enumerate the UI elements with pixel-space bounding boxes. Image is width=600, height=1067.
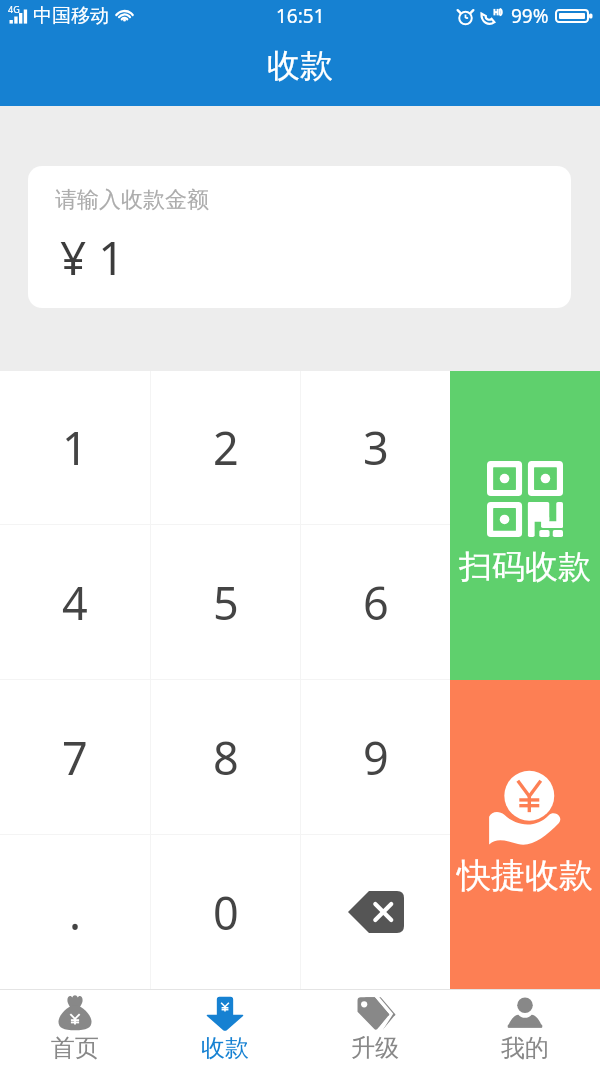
staticText: 5 xyxy=(213,572,239,633)
button[interactable]: 升级 xyxy=(300,990,450,1067)
button[interactable]: 7 xyxy=(0,680,150,834)
button[interactable]: Delete xyxy=(301,835,450,989)
staticText: 4 xyxy=(62,572,88,633)
staticText: 0 xyxy=(213,882,239,943)
staticText: 快捷收款 xyxy=(457,854,593,897)
button[interactable]: 4 xyxy=(0,525,150,679)
button[interactable]: 8 xyxy=(151,680,300,834)
button[interactable]: 首页 xyxy=(0,990,150,1067)
button[interactable]: 扫码收款 xyxy=(450,371,600,680)
button[interactable]: 3 xyxy=(301,371,450,524)
staticText: 我的 xyxy=(501,1033,549,1063)
staticText: 收款 xyxy=(267,45,333,87)
staticText: 16:51 xyxy=(276,3,325,29)
staticText: 1 xyxy=(62,417,88,478)
staticText: 99% xyxy=(511,3,549,29)
staticText: 7 xyxy=(62,727,88,788)
staticText: 扫码收款 xyxy=(459,546,591,588)
button[interactable]: 请输入收款金额 xyxy=(28,166,571,308)
button[interactable]: 0 xyxy=(151,835,300,989)
button[interactable]: 收款 xyxy=(150,990,300,1067)
staticText: 2 xyxy=(213,417,239,478)
button[interactable]: 1 xyxy=(0,371,150,524)
staticText: 收款 xyxy=(201,1033,249,1063)
button[interactable]: 2 xyxy=(151,371,300,524)
staticText: ¥ 1 xyxy=(60,226,125,289)
button[interactable]: 快捷收款 xyxy=(450,680,600,989)
staticText: 首页 xyxy=(51,1033,99,1063)
staticText: 4G xyxy=(8,3,20,15)
staticText: 9 xyxy=(363,727,389,788)
staticText: 3 xyxy=(363,417,389,478)
staticText: 请输入收款金额 xyxy=(55,186,209,214)
staticText: 6 xyxy=(363,572,389,633)
button[interactable]: 5 xyxy=(151,525,300,679)
button[interactable]: 6 xyxy=(301,525,450,679)
staticText: 中国移动 xyxy=(33,4,109,28)
staticText: 8 xyxy=(213,727,239,788)
staticText: . xyxy=(69,882,82,943)
button[interactable]: 我的 xyxy=(450,990,600,1067)
button[interactable]: 9 xyxy=(301,680,450,834)
button[interactable]: . xyxy=(0,835,150,989)
staticText: 升级 xyxy=(351,1033,399,1063)
